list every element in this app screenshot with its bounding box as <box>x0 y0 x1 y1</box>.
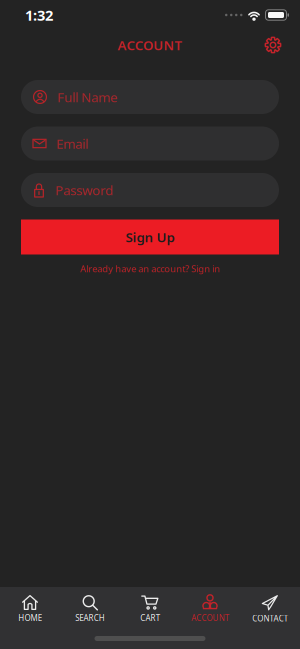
button[interactable]: HOME <box>0 594 60 623</box>
button[interactable]: Email <box>21 126 279 160</box>
button[interactable]: ACCOUNT <box>180 594 240 623</box>
staticText: Already have an account? Sign in <box>80 262 220 275</box>
button[interactable]: Sign Up <box>21 219 279 254</box>
button[interactable]: CART <box>120 594 180 623</box>
staticText: Email <box>56 135 88 152</box>
button[interactable]: CONTACT <box>240 594 300 624</box>
staticText: HOME <box>18 612 42 623</box>
staticText: ACCOUNT <box>117 36 183 54</box>
staticText: 1:32 <box>25 5 53 25</box>
staticText: SEARCH <box>75 612 105 623</box>
staticText: Sign Up <box>125 228 174 246</box>
button[interactable]: Password <box>21 173 279 207</box>
button[interactable]: Already have an account? Sign in <box>80 262 220 275</box>
staticText: Password <box>55 181 113 199</box>
staticText: CONTACT <box>252 613 288 624</box>
button[interactable]: SEARCH <box>60 594 120 623</box>
staticText: CART <box>140 612 160 623</box>
staticText: Full Name <box>57 88 118 106</box>
button[interactable]: Full Name <box>21 80 279 114</box>
button[interactable]: Settings <box>265 37 281 53</box>
staticText: ACCOUNT <box>191 612 229 623</box>
